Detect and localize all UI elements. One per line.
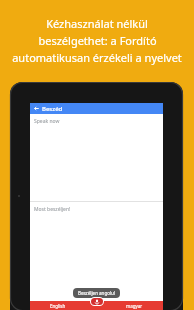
staticText: Most beszéljen! xyxy=(34,206,71,213)
button[interactable]: Microphone xyxy=(91,298,103,305)
staticText: automatikusan érzékeli a nyelvet xyxy=(12,50,182,65)
button[interactable]: Speak now xyxy=(30,114,163,201)
button[interactable]: Most beszéljen! xyxy=(30,202,163,301)
button[interactable]: magyar xyxy=(106,301,163,310)
staticText: Speak now xyxy=(34,118,60,125)
button[interactable]: English xyxy=(30,301,86,310)
button[interactable]: Back xyxy=(33,105,40,112)
button[interactable]: Back xyxy=(30,103,163,114)
staticText: magyar xyxy=(126,303,143,309)
staticText: English xyxy=(50,303,66,309)
staticText: Beszéljen angolul xyxy=(78,290,115,296)
button[interactable]: Beszéljen angolul xyxy=(78,290,115,296)
staticText: Kézhasználat nélkül xyxy=(46,16,148,31)
staticText: Beszéd xyxy=(42,105,63,113)
staticText: beszélgethet: a Fordító xyxy=(38,33,157,48)
